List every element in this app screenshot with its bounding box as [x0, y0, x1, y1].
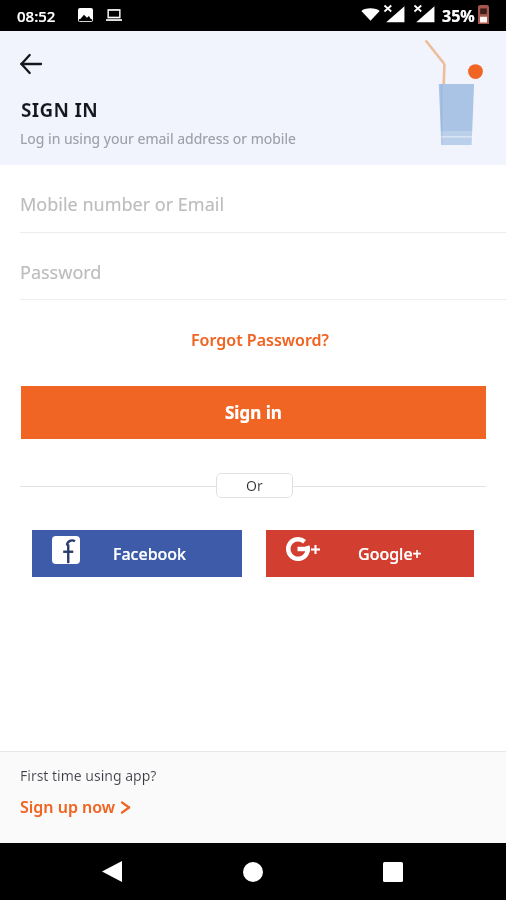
staticText: Mobile number or Email	[20, 192, 225, 217]
staticText: 35%	[442, 5, 475, 27]
button[interactable]: Facebook	[32, 530, 242, 577]
button[interactable]: Sign up now	[20, 796, 131, 818]
staticText: 08:52	[17, 6, 56, 26]
button[interactable]: Google+	[266, 530, 474, 577]
button[interactable]: Back	[82, 843, 142, 900]
staticText: Sign up now	[20, 796, 116, 818]
staticText: Sign in	[225, 401, 282, 424]
button[interactable]: Back	[11, 44, 51, 84]
button[interactable]: Home	[223, 843, 283, 900]
staticText: Google+	[358, 543, 422, 565]
button[interactable]: Sign in	[21, 386, 486, 439]
staticText: First time using app?	[20, 766, 157, 785]
staticText: SIGN IN	[21, 97, 98, 123]
staticText: Password	[20, 260, 102, 285]
button[interactable]: Recents	[363, 843, 423, 900]
staticText: Facebook	[113, 543, 187, 565]
staticText: Log in using your email address or mobil…	[20, 129, 296, 148]
button[interactable]: Forgot Password?	[7, 326, 506, 354]
staticText: Or	[246, 476, 263, 495]
staticText: Forgot Password?	[191, 329, 329, 351]
